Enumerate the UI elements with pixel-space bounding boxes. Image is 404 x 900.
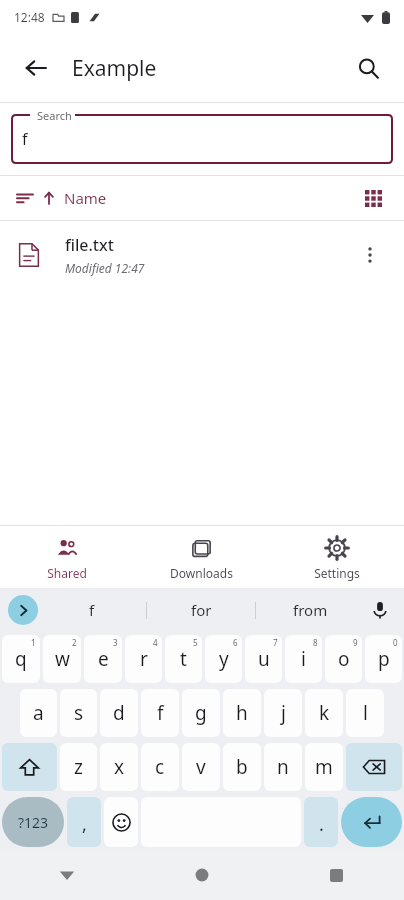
button[interactable]: b bbox=[223, 743, 261, 791]
button[interactable]: t bbox=[165, 635, 202, 683]
button[interactable]: q bbox=[2, 635, 40, 683]
button[interactable]: y bbox=[205, 635, 242, 683]
button[interactable]: Grid view bbox=[356, 181, 390, 215]
staticText: Name bbox=[64, 188, 107, 208]
staticText: b bbox=[236, 754, 248, 780]
staticText: u bbox=[258, 646, 270, 672]
staticText: , bbox=[82, 812, 87, 837]
button[interactable]: Expand suggestions bbox=[8, 595, 38, 625]
staticText: l bbox=[363, 700, 368, 726]
button[interactable]: e bbox=[84, 635, 122, 683]
staticText: x bbox=[114, 754, 125, 780]
staticText: 9 bbox=[353, 637, 358, 648]
staticText: s bbox=[74, 700, 84, 726]
staticText: n bbox=[277, 754, 289, 780]
button[interactable]: Home bbox=[134, 850, 269, 900]
staticText: y bbox=[219, 646, 229, 672]
staticText: w bbox=[55, 646, 70, 672]
button[interactable]: Shared bbox=[0, 526, 134, 588]
button[interactable]: Shift bbox=[2, 743, 57, 791]
button[interactable]: for bbox=[147, 588, 255, 632]
button[interactable]: Downloads bbox=[134, 526, 269, 588]
staticText: 5 bbox=[193, 637, 198, 648]
button[interactable]: ?123 bbox=[2, 797, 64, 847]
staticText: 6 bbox=[233, 637, 238, 648]
button[interactable]: Enter bbox=[341, 797, 402, 847]
button[interactable]: , bbox=[67, 797, 101, 847]
button[interactable]: x bbox=[100, 743, 138, 791]
staticText: from bbox=[293, 600, 328, 620]
staticText: Downloads bbox=[170, 565, 233, 581]
staticText: g bbox=[195, 700, 207, 726]
staticText: p bbox=[378, 646, 390, 672]
button[interactable]: Back bbox=[0, 850, 134, 900]
button[interactable]: f bbox=[38, 588, 146, 632]
button[interactable]: a bbox=[20, 689, 57, 737]
button[interactable]: d bbox=[100, 689, 138, 737]
staticText: 12:48 bbox=[14, 9, 45, 25]
staticText: f bbox=[89, 600, 95, 620]
staticText: . bbox=[319, 812, 324, 837]
button[interactable]: z bbox=[60, 743, 97, 791]
button[interactable]: Emoji bbox=[104, 797, 138, 847]
staticText: Shared bbox=[47, 565, 87, 581]
button[interactable]: u bbox=[245, 635, 282, 683]
staticText: t bbox=[180, 646, 187, 672]
staticText: Settings bbox=[314, 565, 360, 581]
button[interactable]: from bbox=[256, 588, 364, 632]
staticText: k bbox=[319, 700, 330, 726]
staticText: file.txt bbox=[65, 234, 114, 256]
staticText: m bbox=[315, 754, 333, 780]
staticText: q bbox=[15, 646, 27, 672]
staticText: Search bbox=[37, 108, 72, 123]
staticText: i bbox=[301, 646, 306, 672]
button[interactable]: More options bbox=[352, 237, 388, 273]
button[interactable]: h bbox=[223, 689, 261, 737]
staticText: Modified 12:47 bbox=[65, 260, 145, 276]
staticText: h bbox=[236, 700, 248, 726]
staticText: j bbox=[281, 700, 286, 726]
staticText: a bbox=[33, 700, 44, 726]
button[interactable]: n bbox=[264, 743, 302, 791]
staticText: o bbox=[338, 646, 350, 672]
button[interactable]: Search bbox=[348, 48, 388, 88]
button[interactable]: m bbox=[305, 743, 343, 791]
button[interactable]: w bbox=[43, 635, 81, 683]
staticText: e bbox=[98, 646, 109, 672]
staticText: 3 bbox=[113, 637, 118, 648]
staticText: 1 bbox=[31, 637, 36, 648]
button[interactable]: Back bbox=[16, 48, 56, 88]
button[interactable]: o bbox=[325, 635, 362, 683]
button[interactable]: . bbox=[304, 797, 338, 847]
staticText: z bbox=[74, 754, 83, 780]
button[interactable]: j bbox=[264, 689, 302, 737]
button[interactable]: s bbox=[60, 689, 97, 737]
button[interactable]: Settings bbox=[269, 526, 404, 588]
button[interactable]: Backspace bbox=[346, 743, 402, 791]
staticText: 8 bbox=[313, 637, 318, 648]
button[interactable]: g bbox=[182, 689, 220, 737]
button[interactable]: k bbox=[305, 689, 343, 737]
staticText: for bbox=[191, 600, 212, 620]
staticText: d bbox=[113, 700, 125, 726]
staticText: 2 bbox=[72, 637, 77, 648]
button[interactable]: p bbox=[365, 635, 402, 683]
staticText: v bbox=[196, 754, 206, 780]
staticText: 7 bbox=[273, 637, 278, 648]
staticText: 0 bbox=[393, 637, 398, 648]
staticText: c bbox=[155, 754, 165, 780]
button[interactable]: v bbox=[182, 743, 220, 791]
button[interactable]: Voice input bbox=[364, 594, 396, 626]
button[interactable]: c bbox=[141, 743, 179, 791]
button[interactable]: Recents bbox=[269, 850, 404, 900]
button[interactable]: file.txt bbox=[0, 221, 404, 289]
button[interactable]: r bbox=[125, 635, 162, 683]
button[interactable]: Search bbox=[12, 115, 392, 163]
staticText: 4 bbox=[153, 637, 158, 648]
button[interactable]: i bbox=[285, 635, 322, 683]
button[interactable]: f bbox=[141, 689, 179, 737]
staticText: f bbox=[22, 128, 28, 150]
button[interactable]: l bbox=[346, 689, 384, 737]
button[interactable]: Name bbox=[14, 182, 109, 214]
